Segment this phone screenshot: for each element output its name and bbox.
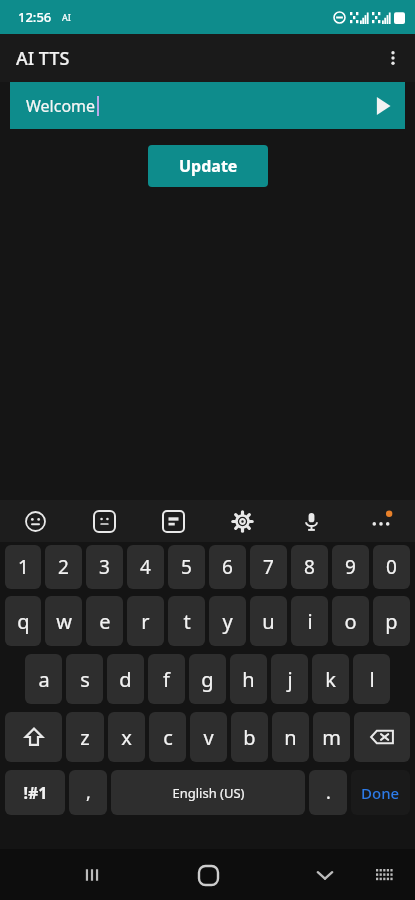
button[interactable]: Recent apps bbox=[72, 855, 112, 895]
button[interactable]: z bbox=[66, 712, 104, 762]
staticText: b bbox=[243, 724, 256, 751]
staticText: Done bbox=[361, 783, 400, 803]
button[interactable]: w bbox=[45, 596, 82, 646]
button[interactable]: !#1 bbox=[5, 770, 65, 815]
staticText: f bbox=[163, 666, 170, 693]
button[interactable]: English (US) bbox=[111, 770, 305, 815]
staticText: s bbox=[80, 666, 90, 693]
button[interactable]: More bbox=[346, 500, 415, 542]
button[interactable]: 9 bbox=[332, 545, 369, 589]
button[interactable]: Welcome bbox=[10, 82, 405, 129]
button[interactable]: Home bbox=[186, 853, 230, 897]
staticText: v bbox=[203, 724, 214, 751]
button[interactable]: k bbox=[312, 654, 349, 704]
staticText: !#1 bbox=[23, 782, 48, 804]
staticText: g bbox=[201, 666, 214, 693]
staticText: l bbox=[369, 666, 375, 693]
staticText: 9 bbox=[345, 554, 356, 580]
staticText: t bbox=[183, 608, 191, 635]
staticText: p bbox=[385, 608, 398, 635]
button[interactable]: g bbox=[189, 654, 226, 704]
button[interactable]: , bbox=[69, 770, 107, 815]
staticText: c bbox=[163, 724, 173, 751]
staticText: 0 bbox=[386, 554, 397, 580]
staticText: r bbox=[141, 608, 150, 635]
button[interactable]: p bbox=[373, 596, 410, 646]
staticText: Update bbox=[179, 155, 238, 177]
staticText: x bbox=[121, 724, 132, 751]
button[interactable]: c bbox=[149, 712, 186, 762]
button[interactable]: Update bbox=[148, 145, 268, 187]
button[interactable]: Emoji bbox=[0, 500, 70, 542]
button[interactable]: d bbox=[107, 654, 144, 704]
staticText: i bbox=[307, 608, 313, 635]
button[interactable]: n bbox=[272, 712, 309, 762]
button[interactable]: 0 bbox=[373, 545, 410, 589]
button[interactable]: Speak bbox=[361, 84, 405, 128]
button[interactable]: u bbox=[250, 596, 287, 646]
button[interactable]: l bbox=[353, 654, 390, 704]
staticText: h bbox=[242, 666, 255, 693]
staticText: a bbox=[38, 666, 50, 693]
staticText: o bbox=[344, 608, 357, 635]
button[interactable]: 4 bbox=[127, 545, 164, 589]
button[interactable]: s bbox=[66, 654, 103, 704]
staticText: m bbox=[322, 724, 341, 751]
button[interactable]: Settings bbox=[208, 500, 277, 542]
staticText: 1 bbox=[18, 554, 29, 580]
button[interactable]: y bbox=[209, 596, 246, 646]
staticText: English (US) bbox=[172, 784, 245, 802]
staticText: Welcome bbox=[26, 95, 96, 117]
button[interactable]: m bbox=[313, 712, 350, 762]
button[interactable]: v bbox=[190, 712, 227, 762]
button[interactable]: h bbox=[230, 654, 267, 704]
button[interactable]: Hide keyboard bbox=[305, 855, 345, 895]
button[interactable]: Stickers bbox=[70, 500, 139, 542]
staticText: 12:56 bbox=[18, 8, 52, 26]
staticText: 7 bbox=[263, 554, 274, 580]
button[interactable]: q bbox=[5, 596, 41, 646]
button[interactable]: a bbox=[25, 654, 62, 704]
staticText: , bbox=[86, 780, 91, 805]
button[interactable]: GIF bbox=[139, 500, 208, 542]
button[interactable]: Voice input bbox=[277, 500, 346, 542]
staticText: n bbox=[284, 724, 297, 751]
button[interactable]: 7 bbox=[250, 545, 287, 589]
staticText: k bbox=[325, 666, 336, 693]
button[interactable]: Change keyboard bbox=[365, 855, 405, 895]
button[interactable]: t bbox=[168, 596, 205, 646]
staticText: . bbox=[326, 780, 331, 805]
staticText: w bbox=[56, 608, 72, 635]
button[interactable]: 2 bbox=[45, 545, 82, 589]
button[interactable]: f bbox=[148, 654, 185, 704]
staticText: d bbox=[119, 666, 132, 693]
button[interactable]: x bbox=[108, 712, 145, 762]
button[interactable]: More options bbox=[371, 36, 415, 80]
staticText: u bbox=[262, 608, 275, 635]
button[interactable]: Done bbox=[351, 770, 410, 815]
staticText: z bbox=[80, 724, 90, 751]
staticText: AI TTS bbox=[16, 46, 70, 71]
button[interactable]: 5 bbox=[168, 545, 205, 589]
button[interactable]: 1 bbox=[5, 545, 41, 589]
button[interactable]: 6 bbox=[209, 545, 246, 589]
staticText: y bbox=[222, 608, 233, 635]
button[interactable]: o bbox=[332, 596, 369, 646]
button[interactable]: r bbox=[127, 596, 164, 646]
staticText: 4 bbox=[140, 554, 151, 580]
button[interactable]: Backspace bbox=[354, 712, 410, 762]
button[interactable]: . bbox=[309, 770, 347, 815]
button[interactable]: j bbox=[271, 654, 308, 704]
staticText: j bbox=[287, 666, 293, 693]
button[interactable]: 8 bbox=[291, 545, 328, 589]
button[interactable]: e bbox=[86, 596, 123, 646]
button[interactable]: 3 bbox=[86, 545, 123, 589]
button[interactable]: i bbox=[291, 596, 328, 646]
button[interactable]: b bbox=[231, 712, 268, 762]
button[interactable]: Shift bbox=[5, 712, 62, 762]
staticText: e bbox=[99, 608, 111, 635]
staticText: 6 bbox=[222, 554, 233, 580]
staticText: 8 bbox=[304, 554, 315, 580]
staticText: q bbox=[17, 608, 30, 635]
staticText: 3 bbox=[99, 554, 110, 580]
